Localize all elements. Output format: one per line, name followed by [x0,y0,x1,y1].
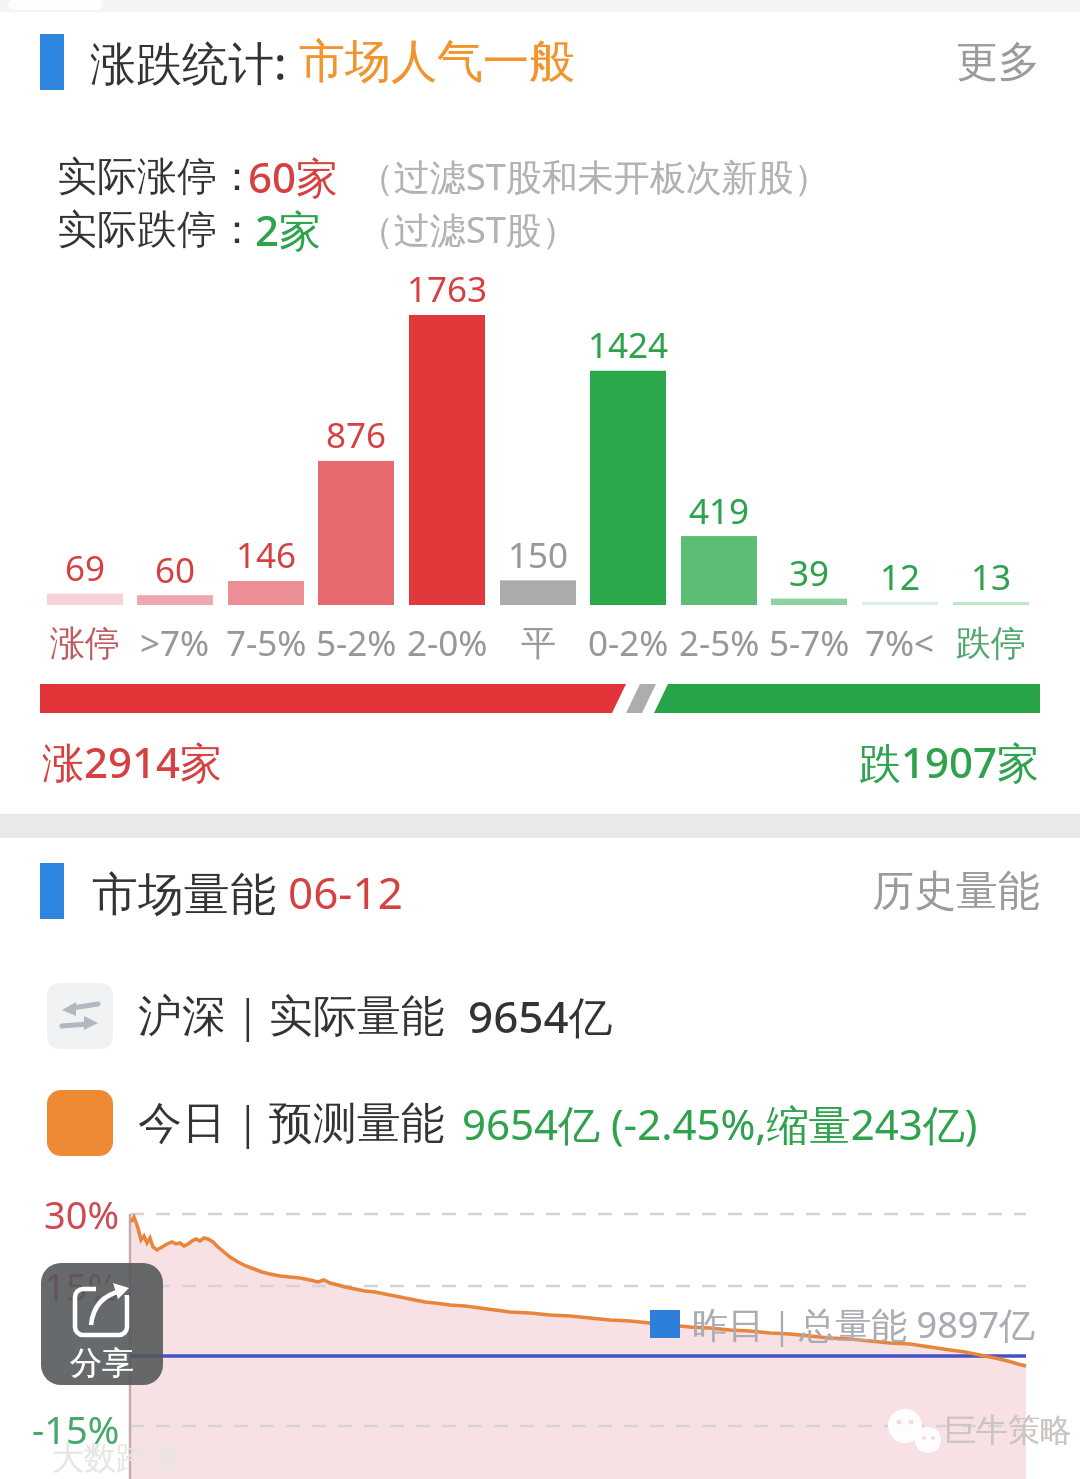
staticText: 市场人气一般 [299,33,575,91]
staticText: 跌1907家 [859,733,1040,790]
staticText: 平 [521,621,556,665]
staticText: 2-0% [407,619,488,667]
staticText: 1424 [588,321,669,369]
button[interactable]: 更多 [930,31,1040,94]
staticText: 146 [236,531,297,579]
staticText: 更多 [956,36,1040,89]
staticText: 5-7% [769,619,850,667]
staticText: 5-2% [316,619,397,667]
staticText: 9654亿 [468,986,613,1046]
staticText: -15% [32,1403,120,1455]
staticText: （过滤ST股和未开板次新股） [358,152,830,201]
staticText: 7-5% [226,619,307,667]
button[interactable]: 市场量能 [92,860,403,924]
button[interactable]: 沪深｜实际量能 [138,985,613,1047]
staticText: （过滤ST股） [358,205,578,254]
staticText: 分享 [70,1343,134,1383]
staticText: 0-2% [588,619,669,667]
staticText: 39 [789,549,830,597]
staticText: 419 [689,487,750,535]
staticText: 实际跌停： [57,204,257,254]
staticText: 150 [508,531,569,579]
staticText: 7%< [865,619,935,667]
staticText: 12 [880,553,921,601]
staticText: 30% [44,1188,120,1240]
staticText: 沪深｜实际量能 [138,989,446,1044]
staticText: 历史量能 [872,865,1040,918]
staticText: 876 [326,411,387,459]
staticText: 涨停 [50,621,120,665]
staticText: 06-12 [288,862,403,922]
staticText: 1763 [407,265,488,313]
staticText: 涨跌统计: [90,31,299,94]
button[interactable]: 历史量能 [850,860,1040,923]
staticText: 2家 [255,201,322,258]
staticText: >7% [140,619,210,667]
staticText: 昨日｜总量能 9897亿 [692,1300,1035,1349]
staticText: 实际涨停： [57,151,257,201]
staticText: 9654亿 (-2.45%,缩量243亿) [462,1095,978,1152]
staticText: 市场量能 [92,861,288,924]
staticText: 涨2914家 [42,733,223,790]
button[interactable]: 今日｜预测量能 [138,1092,978,1154]
staticText: 60 [155,546,196,594]
staticText: 60家 [248,148,339,205]
button[interactable]: 分享 [41,1263,163,1385]
staticText: 13 [971,553,1012,601]
staticText: 69 [65,544,106,592]
staticText: 巨牛策略 [944,1410,1072,1450]
staticText: 跌停 [956,621,1026,665]
button[interactable]: 涨跌统计: [90,30,575,94]
staticText: 今日｜预测量能 [138,1096,446,1151]
staticText: 15% [44,1260,120,1312]
staticText: 大数跨境 [52,1438,180,1478]
staticText: 2-5% [679,619,760,667]
